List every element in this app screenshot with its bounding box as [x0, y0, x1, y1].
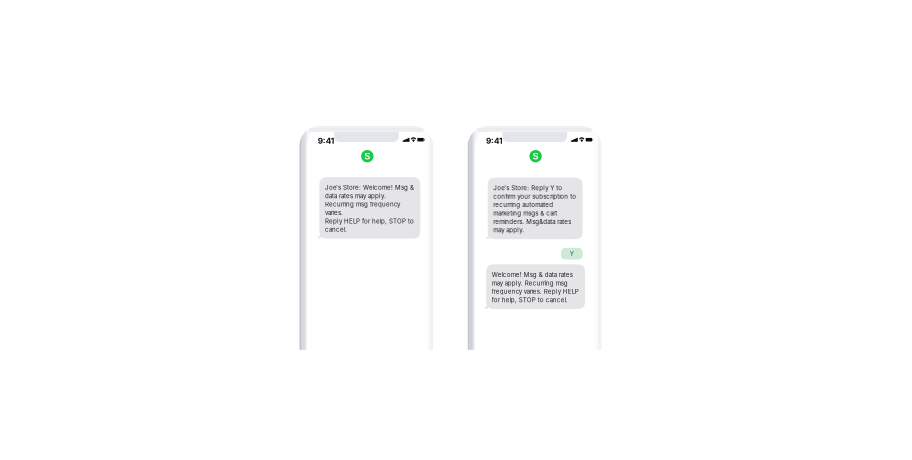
staticText: may apply. — [493, 226, 524, 234]
staticText: marketing msgs & cart — [493, 210, 557, 217]
staticText: reminders. Msg&data rates — [493, 218, 571, 225]
staticText: cancel. — [325, 226, 347, 233]
staticText: data rates may apply. — [325, 192, 386, 200]
staticText: 9:41 — [318, 136, 335, 146]
staticText: varies. — [325, 209, 343, 216]
staticText: Joe's Store: Reply Y to — [493, 184, 562, 192]
staticText: Welcome! Msg & data rates — [492, 271, 573, 278]
staticText: S — [533, 151, 539, 162]
staticText: Y — [570, 250, 574, 257]
staticText: confirm your subscription to — [493, 193, 576, 200]
staticText: Recurring msg frequency — [325, 201, 400, 208]
staticText: Reply HELP for help, STOP to — [325, 217, 414, 225]
staticText: may apply. Recurring msg — [492, 279, 568, 287]
staticText: 9:41 — [486, 136, 503, 146]
staticText: recurring automated — [493, 201, 553, 209]
staticText: frequency varies. Reply HELP — [492, 288, 579, 295]
staticText: S — [364, 151, 370, 162]
staticText: for help, STOP to cancel. — [492, 296, 568, 304]
staticText: Joe's Store: Welcome! Msg & — [325, 184, 414, 191]
